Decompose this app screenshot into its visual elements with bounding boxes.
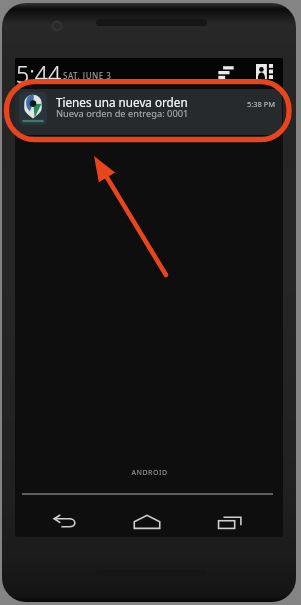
- staticText: 5:44: [16, 58, 62, 86]
- button[interactable]: Account and settings: [256, 64, 273, 79]
- button[interactable]: Home: [127, 507, 167, 537]
- button[interactable]: Recents: [210, 507, 250, 537]
- button[interactable]: Back: [45, 507, 85, 537]
- staticText: Tienes una nueva orden: [56, 94, 188, 110]
- button[interactable]: Tienes una nueva orden: [15, 89, 282, 135]
- staticText: Nueva orden de entrega: 0001: [56, 107, 189, 120]
- button[interactable]: Quick settings: [218, 65, 235, 80]
- staticText: 5:38 PM: [247, 99, 276, 109]
- staticText: ANDROID: [131, 468, 168, 478]
- staticText: SAT, JUNE 3: [63, 70, 112, 81]
